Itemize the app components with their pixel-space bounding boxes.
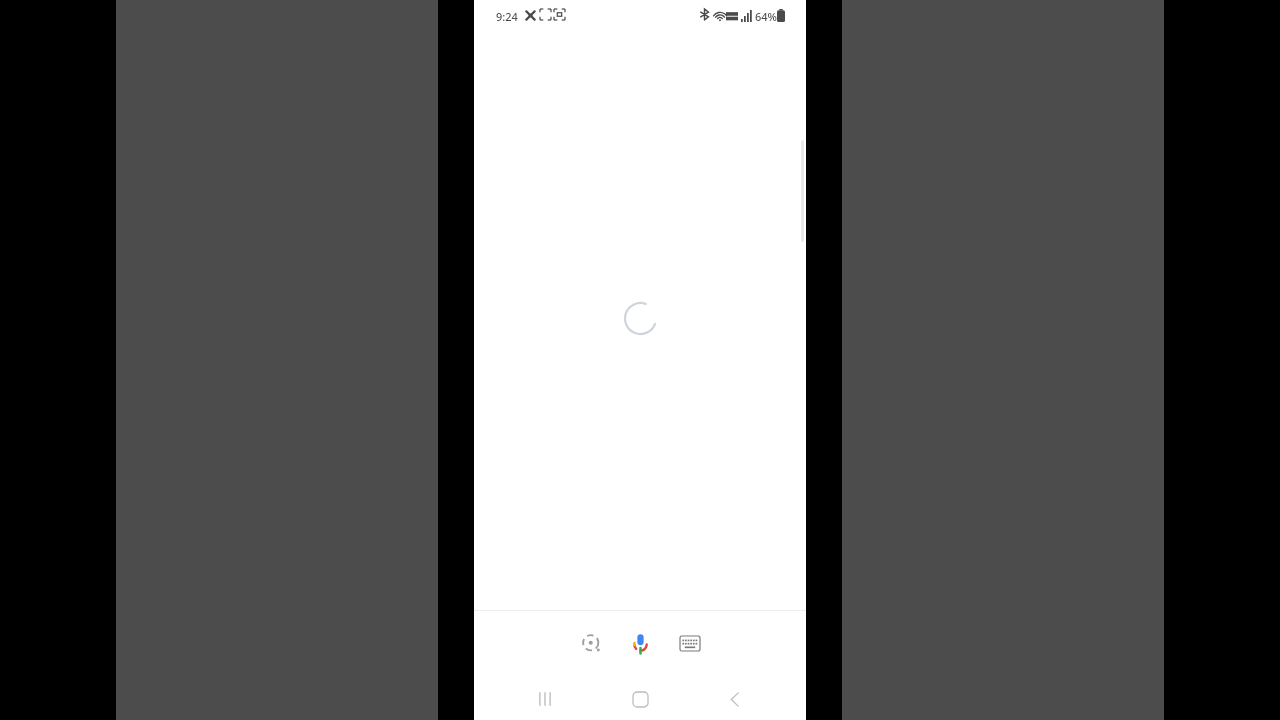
button[interactable]: Voice search <box>623 626 657 660</box>
staticText: 64% <box>755 9 777 24</box>
button[interactable]: Recent apps <box>521 678 569 720</box>
button[interactable]: Google Lens <box>575 627 607 659</box>
button[interactable]: Keyboard <box>674 627 706 659</box>
button[interactable]: Home <box>616 678 664 720</box>
button[interactable]: Back <box>711 678 759 720</box>
staticText: 9:24 <box>496 9 518 24</box>
